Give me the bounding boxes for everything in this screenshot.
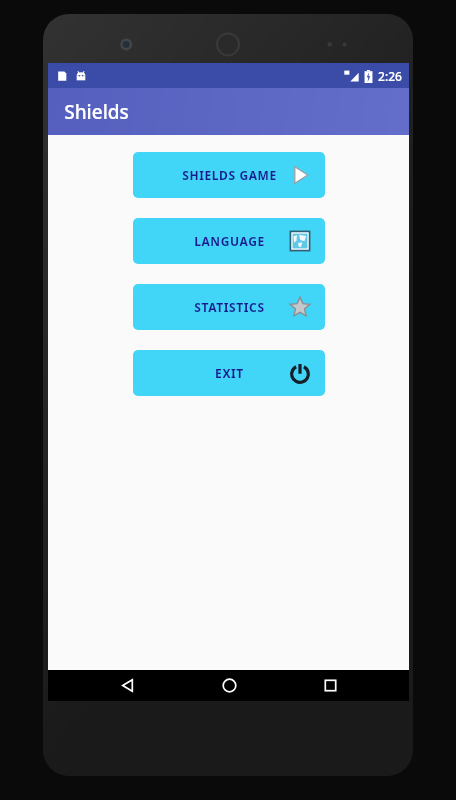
button[interactable]: LANGUAGE	[133, 218, 325, 264]
staticText: Shields	[64, 99, 129, 125]
staticText: LANGUAGE	[194, 233, 265, 249]
button[interactable]: EXIT	[133, 350, 325, 396]
button[interactable]: Home	[207, 670, 251, 701]
staticText: SHIELDS GAME	[182, 167, 277, 183]
button[interactable]: Back	[105, 670, 149, 701]
button[interactable]: STATISTICS	[133, 284, 325, 330]
staticText: 2:26	[378, 68, 402, 84]
button[interactable]: SHIELDS GAME	[133, 152, 325, 198]
staticText: STATISTICS	[194, 299, 265, 315]
staticText: EXIT	[215, 365, 244, 381]
button[interactable]: Recent apps	[308, 670, 352, 701]
